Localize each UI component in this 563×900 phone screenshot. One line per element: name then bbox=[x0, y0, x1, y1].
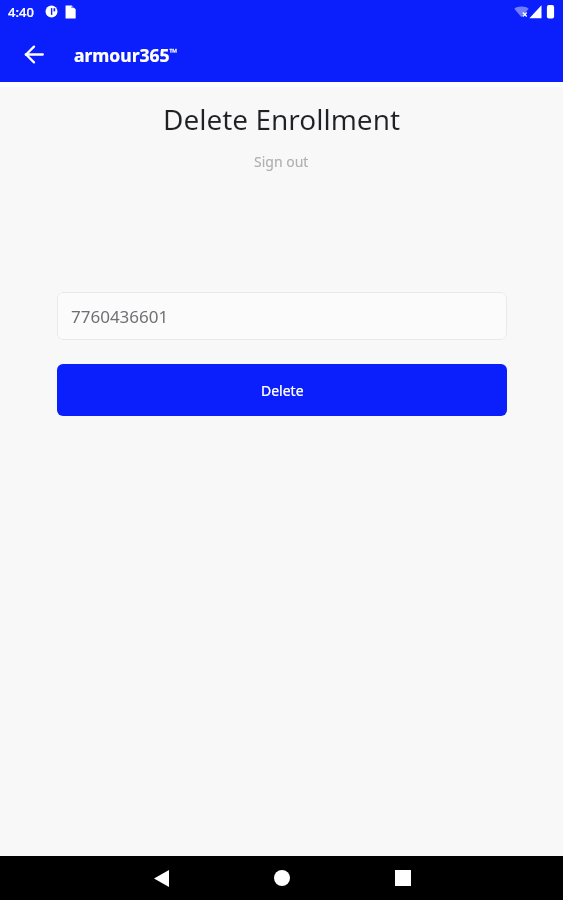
button[interactable]: 7760436601 bbox=[57, 292, 507, 340]
staticText: Delete bbox=[261, 381, 304, 400]
button[interactable]: Recents bbox=[381, 856, 425, 900]
button[interactable]: Delete bbox=[57, 364, 507, 416]
button[interactable]: Back bbox=[16, 36, 52, 72]
button[interactable]: Sign out bbox=[250, 150, 313, 173]
staticText: Delete Enrollment bbox=[163, 100, 401, 138]
staticText: 7760436601 bbox=[71, 305, 169, 328]
staticText: 4:40 bbox=[8, 3, 34, 21]
button[interactable]: Home bbox=[260, 856, 304, 900]
staticText: armour365™ bbox=[74, 43, 178, 67]
button[interactable]: Back bbox=[139, 856, 183, 900]
